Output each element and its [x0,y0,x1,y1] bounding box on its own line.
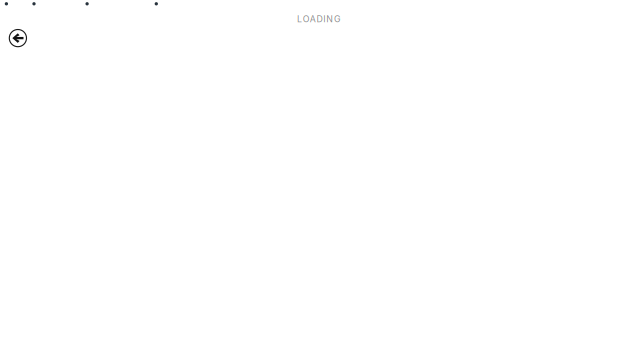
staticText: LOADING [297,14,341,24]
button[interactable]: Back [8,28,28,48]
